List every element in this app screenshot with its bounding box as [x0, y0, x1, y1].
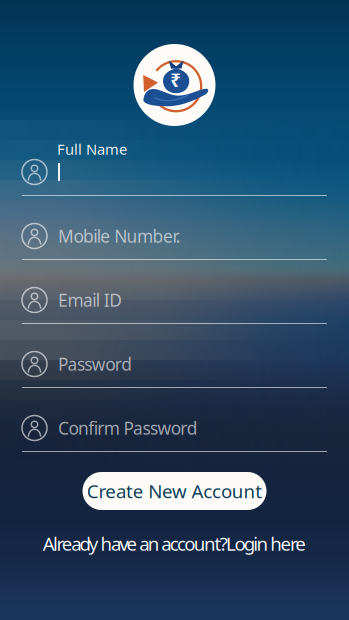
staticText: Confirm Password	[58, 416, 198, 439]
staticText: ₹	[170, 67, 181, 92]
button[interactable]: Already have an account?Login here	[43, 531, 306, 556]
staticText: Create New Account	[87, 479, 262, 503]
button[interactable]: Password	[22, 324, 327, 388]
staticText: Password	[58, 352, 132, 375]
button[interactable]: Email ID	[22, 260, 327, 324]
staticText: Already have an account?Login here	[43, 531, 306, 556]
staticText: Email ID	[58, 288, 122, 311]
staticText: Mobile Number.	[58, 224, 181, 247]
button[interactable]	[22, 156, 327, 196]
staticText: Full Name	[57, 139, 127, 159]
button[interactable]: Create New Account	[82, 472, 266, 510]
button[interactable]: Confirm Password	[22, 388, 327, 452]
button[interactable]: Mobile Number.	[22, 196, 327, 260]
